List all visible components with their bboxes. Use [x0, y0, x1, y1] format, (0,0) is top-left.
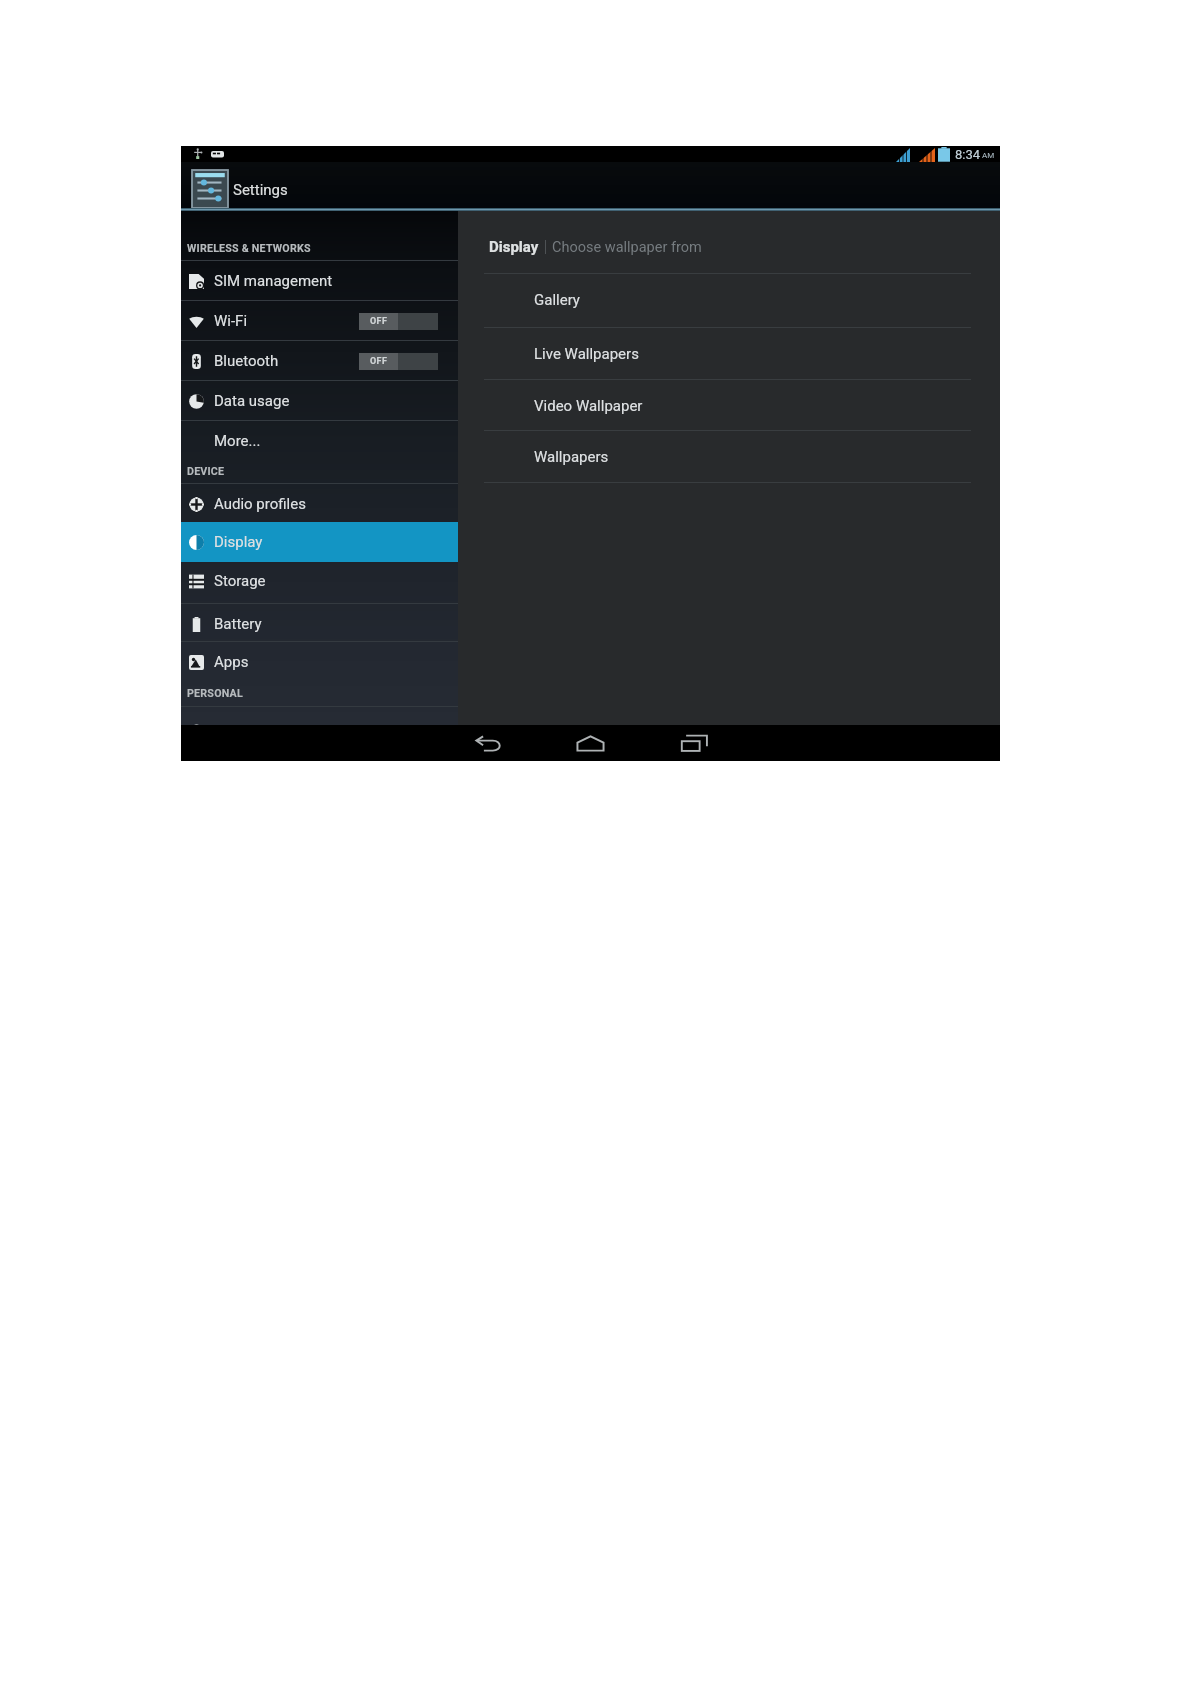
button[interactable]: Data usage — [181, 381, 458, 421]
staticText: Audio profiles — [214, 495, 306, 513]
staticText: OFF — [370, 356, 388, 367]
staticText: Gallery — [534, 291, 580, 309]
button[interactable]: Display — [181, 522, 458, 562]
staticText: Video Wallpaper — [534, 397, 643, 415]
staticText: Apps — [214, 653, 249, 671]
button[interactable]: SIM management — [181, 261, 458, 301]
staticText: SIM management — [214, 272, 333, 290]
button[interactable]: Back — [461, 731, 516, 755]
button[interactable]: Home — [563, 731, 618, 755]
button[interactable]: Wi-Fi — [181, 301, 458, 341]
staticText: 8:34 — [955, 147, 981, 162]
staticText: PERSONAL — [187, 687, 243, 700]
button[interactable]: Security — [181, 711, 458, 751]
staticText: Wallpapers — [534, 448, 609, 466]
button[interactable]: Audio profiles — [181, 484, 458, 524]
staticText: Battery — [214, 615, 262, 633]
staticText: Choose wallpaper from — [552, 239, 702, 256]
staticText: More... — [214, 432, 261, 450]
staticText: AM — [982, 151, 995, 160]
button[interactable]: Video Wallpaper — [458, 380, 1000, 432]
button[interactable]: Wallpapers — [458, 431, 1000, 483]
staticText: Security — [214, 722, 268, 740]
staticText: Wi-Fi — [214, 312, 248, 330]
staticText: Display — [489, 238, 539, 256]
staticText: Live Wallpapers — [534, 345, 639, 363]
button[interactable]: Recent apps — [667, 731, 722, 755]
staticText: DEVICE — [187, 465, 225, 478]
button[interactable]: Apps — [181, 642, 458, 682]
staticText: OFF — [370, 316, 388, 327]
staticText: Bluetooth — [214, 352, 279, 370]
staticText: Settings — [233, 181, 288, 199]
button[interactable]: Live Wallpapers — [458, 328, 1000, 380]
button[interactable]: Gallery — [458, 274, 1000, 326]
button[interactable]: Battery — [181, 604, 458, 644]
button[interactable]: More... — [181, 421, 458, 461]
staticText: WIRELESS & NETWORKS — [187, 242, 311, 255]
button[interactable]: Settings — [181, 162, 341, 208]
button[interactable]: Off — [359, 313, 438, 330]
staticText: Data usage — [214, 392, 290, 410]
button[interactable]: Bluetooth — [181, 341, 458, 381]
staticText: Storage — [214, 572, 266, 590]
button[interactable]: Off — [359, 353, 438, 370]
button[interactable]: Storage — [181, 561, 458, 601]
staticText: Display — [214, 533, 263, 551]
